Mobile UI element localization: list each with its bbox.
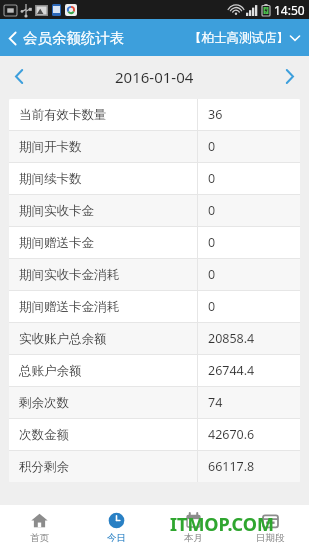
staticText: 本月 (184, 532, 203, 544)
staticText: 【柏士高测试店】 (189, 30, 289, 46)
button[interactable]: 期间开卡数 (9, 131, 300, 162)
staticText: 26744.4 (208, 362, 255, 379)
button[interactable]: 今日 (78, 505, 155, 550)
staticText: 实收账户总余额 (19, 331, 107, 347)
staticText: 日期段 (256, 532, 285, 544)
staticText: 0 (208, 170, 216, 187)
staticText: 期间赠送卡金消耗 (19, 299, 119, 315)
button[interactable]: 日期段 (232, 505, 309, 550)
button[interactable]: 剩余次数 (9, 387, 300, 418)
staticText: 42670.6 (208, 426, 255, 443)
staticText: 当前有效卡数量 (19, 107, 107, 123)
button[interactable]: 总账户余额 (9, 355, 300, 386)
button[interactable]: Next day (271, 60, 309, 93)
staticText: 期间实收卡金消耗 (19, 267, 119, 283)
staticText: 次数金额 (19, 427, 69, 443)
staticText: 14:50 (274, 2, 305, 18)
staticText: 期间实收卡金 (19, 203, 94, 219)
staticText: 期间赠送卡金 (19, 235, 94, 251)
button[interactable]: 期间赠送卡金 (9, 227, 300, 258)
button[interactable]: 当前有效卡数量 (9, 99, 300, 130)
staticText: 会员余额统计表 (23, 29, 125, 47)
staticText: ITMOP.COM (170, 512, 275, 537)
button[interactable]: 积分剩余 (9, 451, 300, 482)
other: Back (8, 31, 17, 46)
staticText: 66117.8 (208, 458, 255, 475)
button[interactable]: 期间赠送卡金消耗 (9, 291, 300, 322)
button[interactable]: 实收账户总余额 (9, 323, 300, 354)
staticText: 期间开卡数 (19, 139, 82, 155)
staticText: 剩余次数 (19, 395, 69, 411)
button[interactable]: 期间实收卡金消耗 (9, 259, 300, 290)
staticText: 0 (208, 138, 216, 155)
button[interactable]: Back (0, 25, 131, 51)
staticText: 期间续卡数 (19, 171, 82, 187)
button[interactable]: 首页 (0, 505, 78, 550)
staticText: 0 (208, 234, 216, 251)
staticText: 首页 (30, 532, 49, 544)
staticText: 0 (208, 202, 216, 219)
staticText: 2016-01-04 (115, 67, 194, 87)
button[interactable]: 期间实收卡金 (9, 195, 300, 226)
button[interactable]: Previous day (0, 60, 38, 93)
staticText: 今日 (107, 532, 126, 544)
staticText: 20858.4 (208, 330, 255, 347)
button[interactable]: 本月 (155, 505, 232, 550)
staticText: 74 (208, 394, 223, 411)
staticText: 积分剩余 (19, 459, 69, 475)
button[interactable]: 期间续卡数 (9, 163, 300, 194)
staticText: 0 (208, 266, 216, 283)
staticText: 36 (208, 106, 223, 123)
staticText: 总账户余额 (19, 363, 82, 379)
button[interactable]: 【柏士高测试店】 (183, 26, 309, 50)
staticText: 0 (208, 298, 216, 315)
button[interactable]: 次数金额 (9, 419, 300, 450)
